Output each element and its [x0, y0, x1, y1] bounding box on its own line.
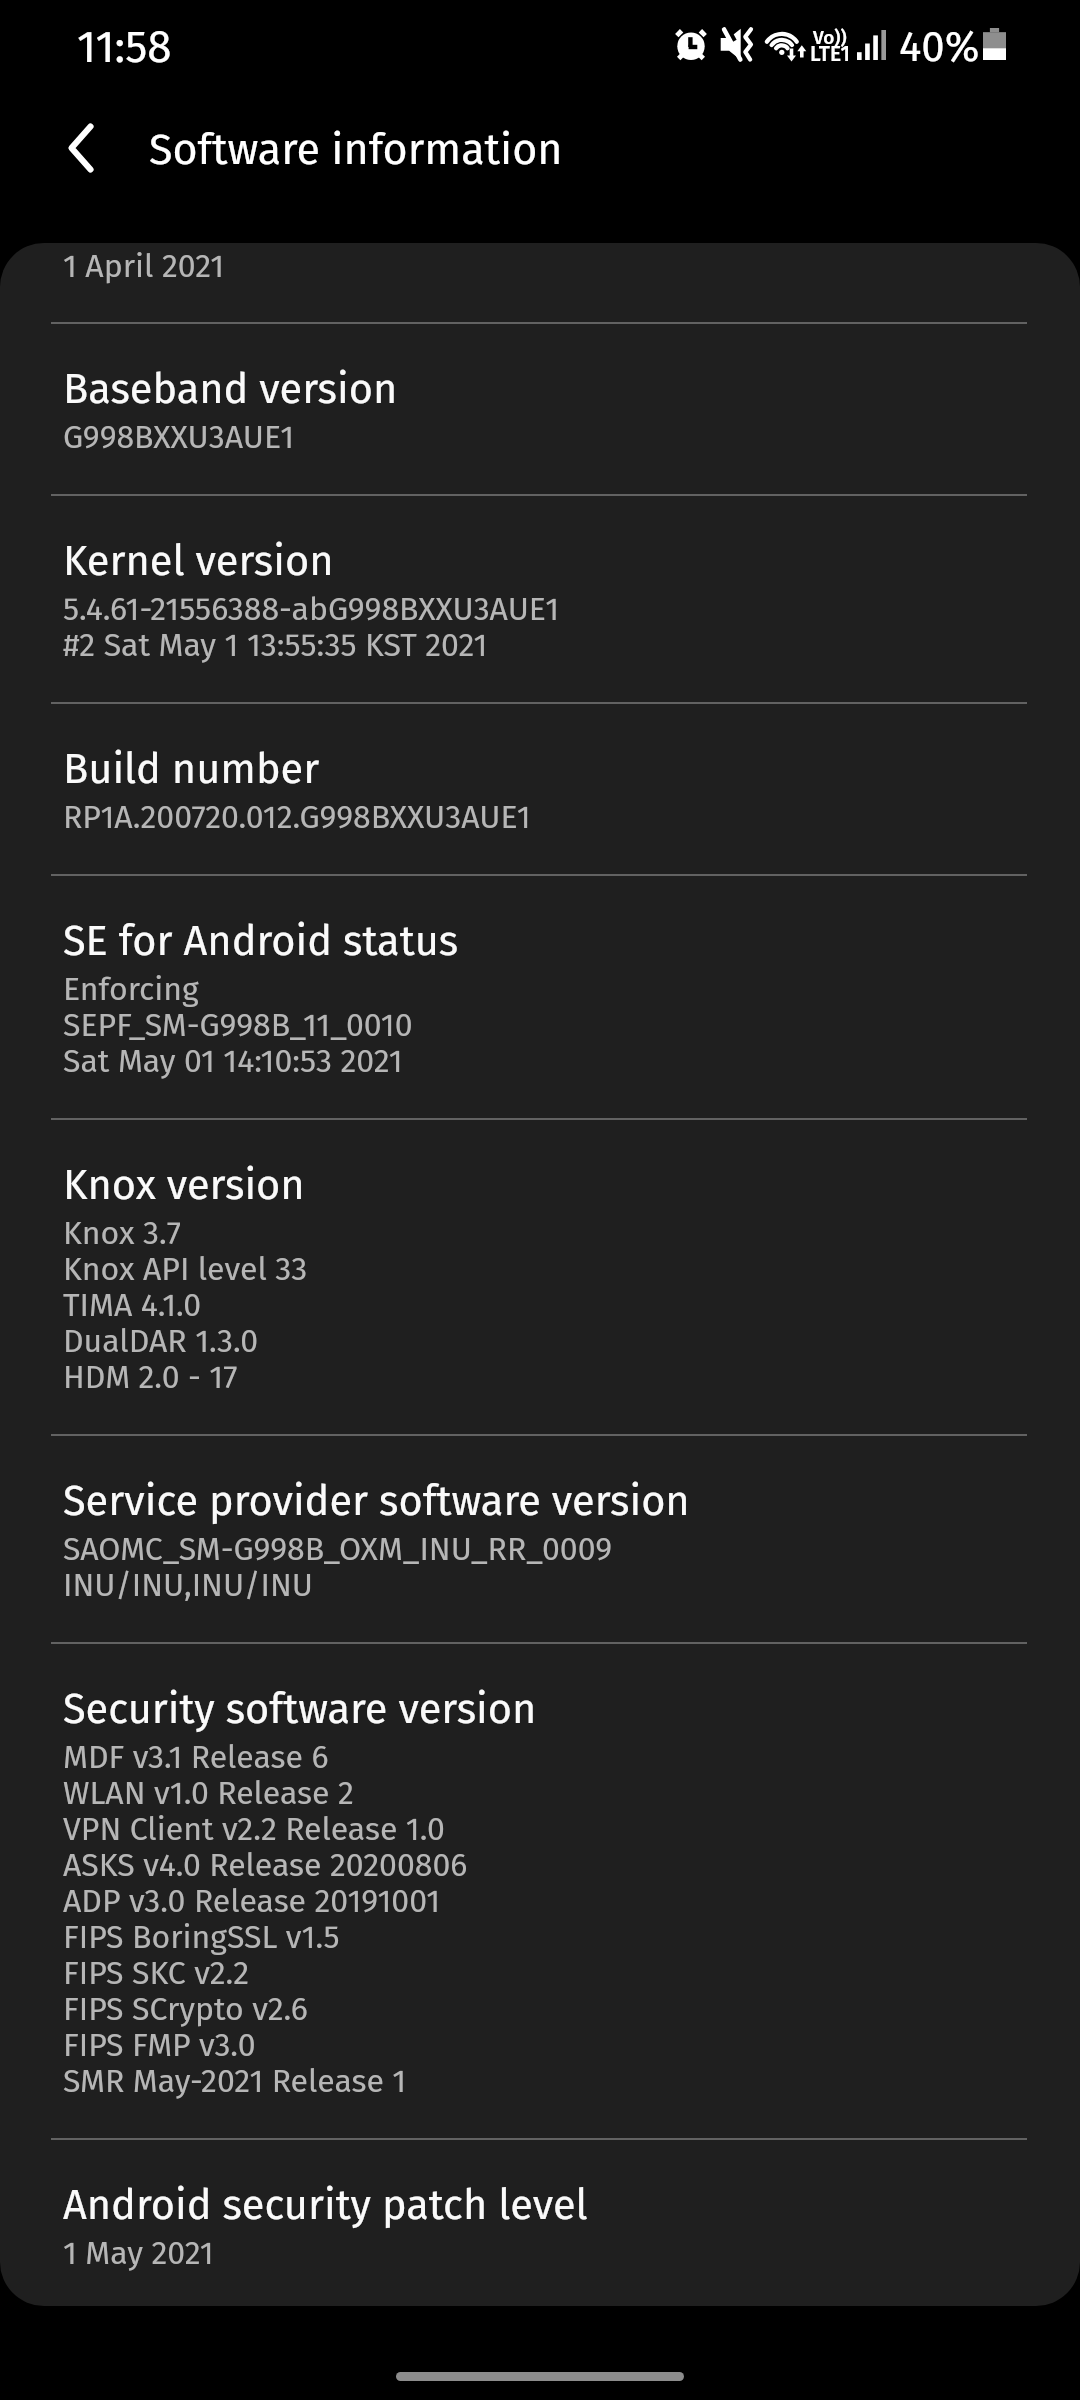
button[interactable]: Navigate up [38, 105, 124, 191]
button[interactable]: Service provider software version [0, 1436, 1080, 1642]
button[interactable]: Android security patch level [0, 2140, 1080, 2306]
staticText: Knox version [63, 1160, 305, 1210]
button[interactable]: Security software version [0, 1644, 1080, 2138]
staticText: Android security patch level [63, 2180, 588, 2230]
staticText: Security software version [63, 1684, 537, 1734]
button[interactable]: Baseband version [0, 324, 1080, 494]
staticText: Vo)) [813, 26, 847, 49]
button[interactable]: Build number [0, 704, 1080, 874]
staticText: 11:58 [77, 21, 172, 74]
staticText: Baseband version [63, 364, 398, 414]
button[interactable]: Knox version [0, 1120, 1080, 1434]
staticText: G998BXXU3AUE1 [63, 420, 295, 456]
staticText: Knox 3.7 Knox API level 33 TIMA 4.1.0 Du… [63, 1216, 308, 1396]
staticText: LTE1 [810, 41, 850, 66]
staticText: 5.4.61-21556388-abG998BXXU3AUE1 #2 Sat M… [63, 592, 560, 664]
staticText: Build number [63, 744, 320, 794]
staticText: SE for Android status [63, 916, 459, 966]
staticText: Software information [149, 124, 563, 176]
staticText: 1 April 2021 [63, 249, 225, 285]
staticText: SAOMC_SM-G998B_OXM_INU_RR_0009 INU/INU,I… [63, 1532, 613, 1604]
staticText: Service provider software version [63, 1476, 690, 1526]
staticText: Enforcing SEPF_SM-G998B_11_0010 Sat May … [63, 972, 413, 1080]
staticText: RP1A.200720.012.G998BXXU3AUE1 [63, 800, 531, 836]
staticText: 40% [899, 22, 980, 72]
staticText: 1 May 2021 [63, 2236, 214, 2272]
staticText: Kernel version [63, 536, 334, 586]
staticText: MDF v3.1 Release 6 WLAN v1.0 Release 2 V… [63, 1740, 468, 2100]
button[interactable]: SE for Android status [0, 876, 1080, 1118]
button[interactable]: Kernel version [0, 496, 1080, 702]
